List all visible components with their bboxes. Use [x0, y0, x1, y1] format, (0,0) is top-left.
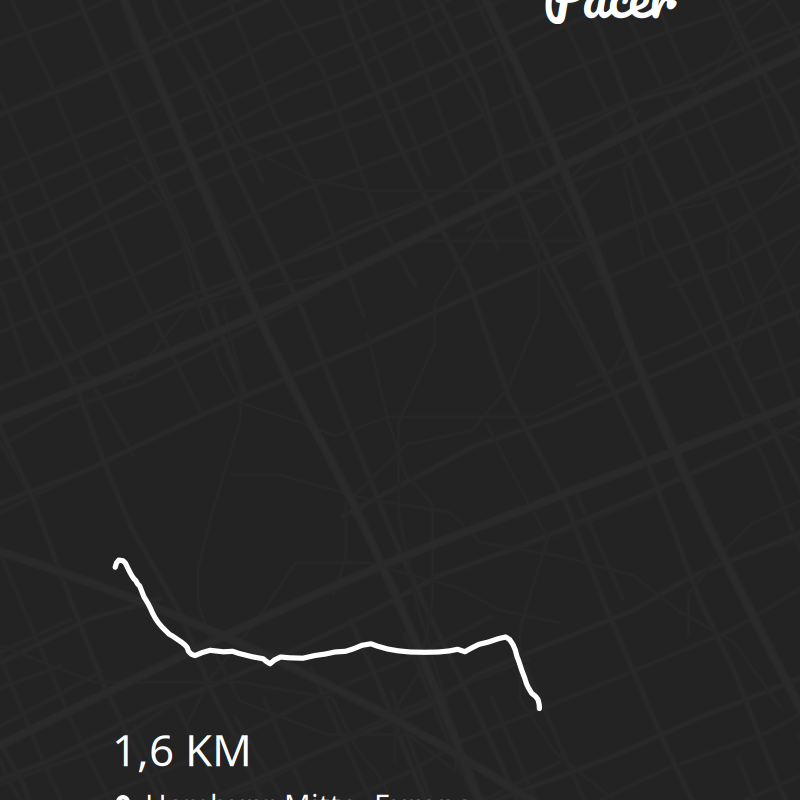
- staticText: Hamburg Mitte, Europa: [145, 785, 472, 800]
- staticText: Pacer: [543, 0, 676, 43]
- staticText: 1,6 KM: [112, 720, 252, 778]
